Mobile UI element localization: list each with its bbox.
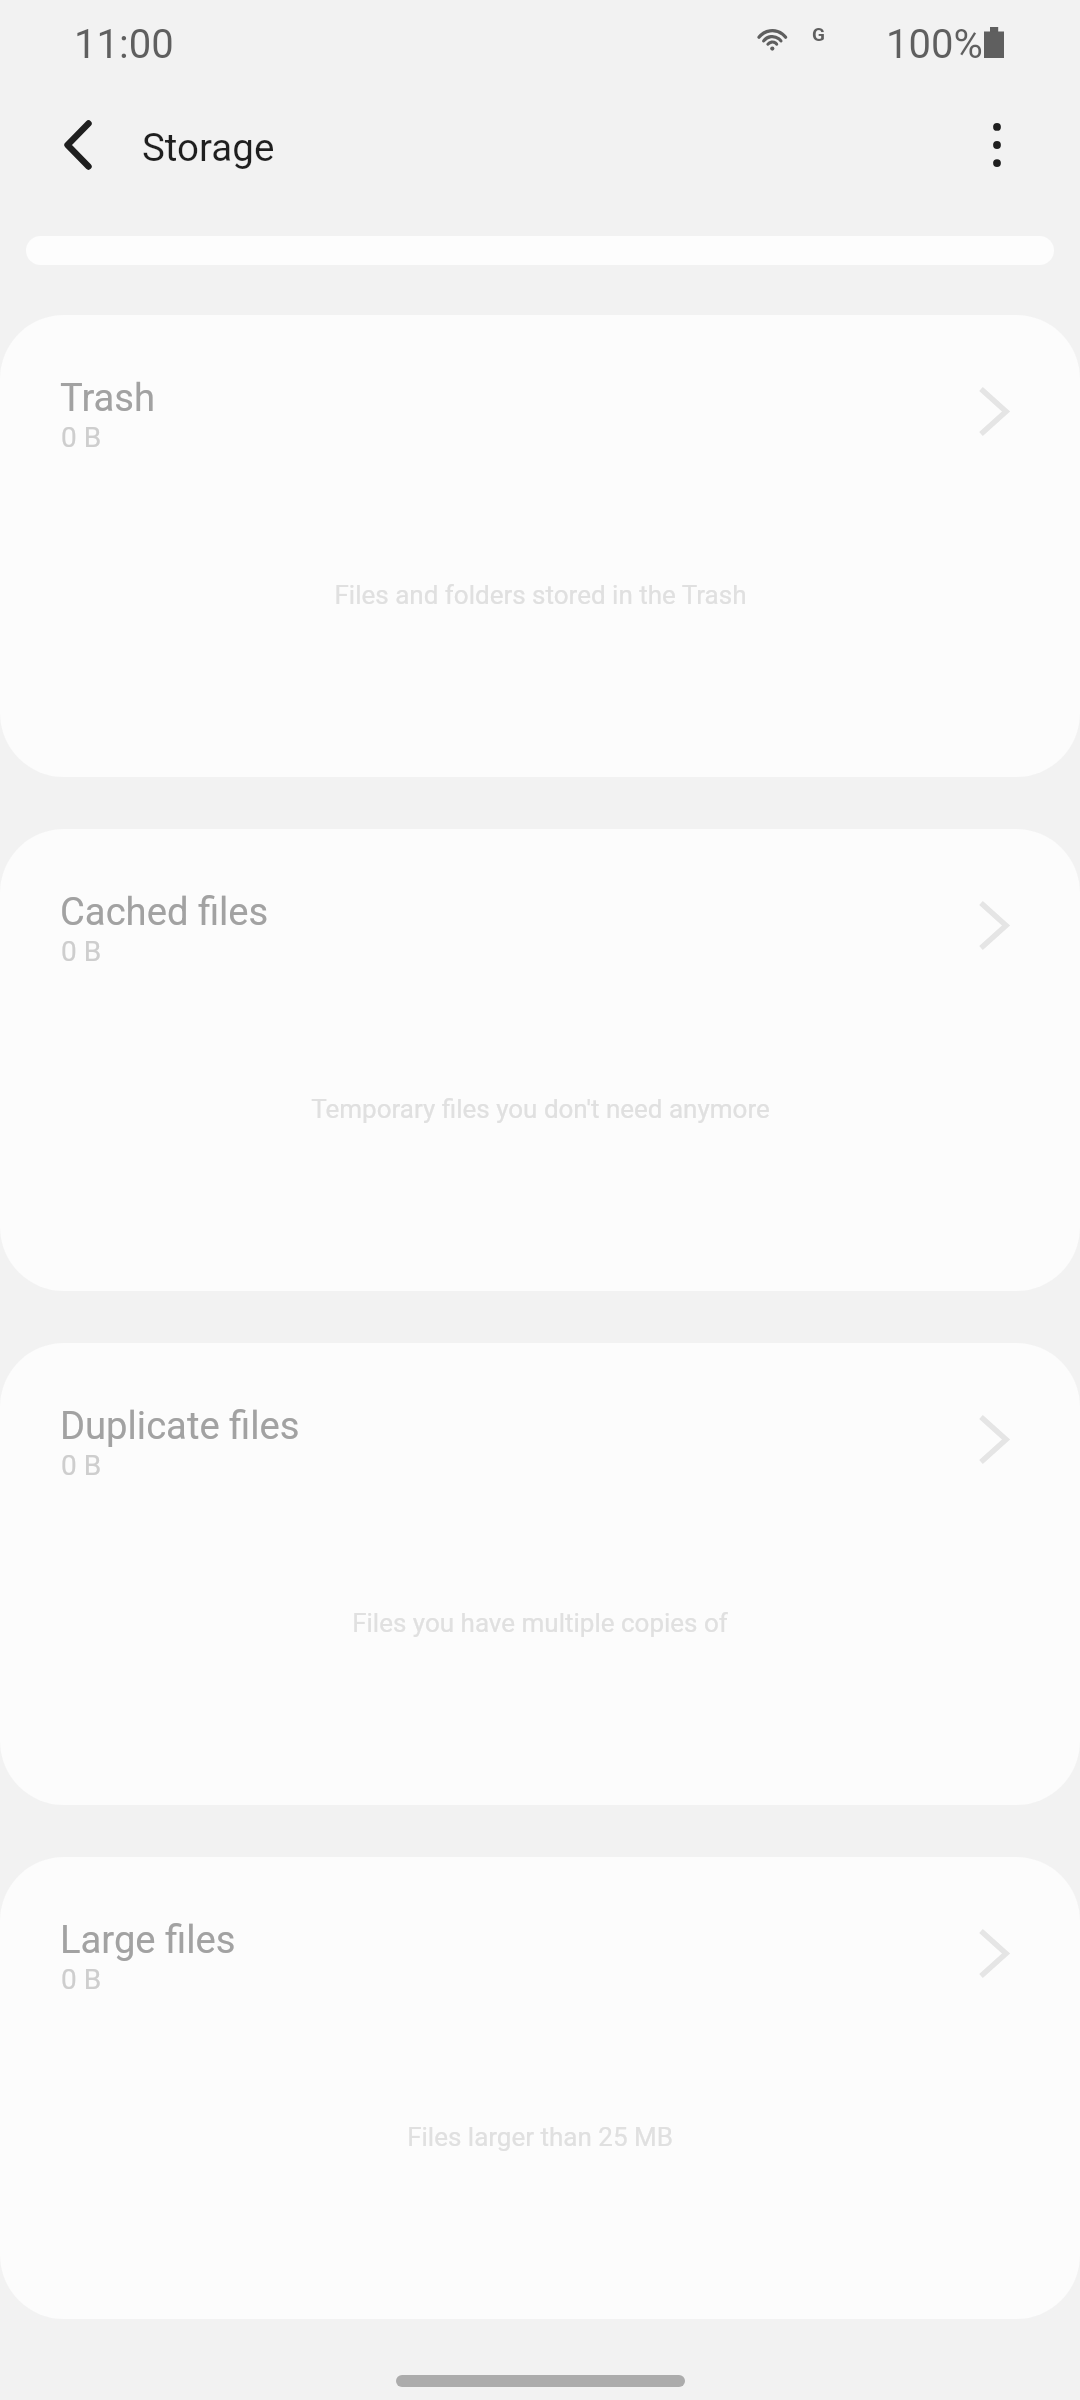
button[interactable]: Navigate up	[30, 97, 126, 193]
staticText: 0 B	[61, 1449, 102, 1482]
staticText: Trash	[60, 376, 156, 421]
other: Wi-Fi	[756, 28, 788, 52]
staticText: 0 B	[61, 1963, 102, 1996]
button[interactable]: Large files	[0, 1857, 1080, 2319]
staticText: 0 B	[61, 935, 102, 968]
staticText: Storage	[142, 125, 275, 170]
staticText: 0 B	[61, 421, 102, 454]
staticText: Files larger than 25 MB	[407, 2122, 673, 2152]
staticText: Large files	[60, 1918, 236, 1963]
staticText: G	[812, 23, 825, 45]
button[interactable]: Duplicate files	[0, 1343, 1080, 1805]
button[interactable]: Trash	[0, 315, 1080, 777]
staticText: Temporary files you don't need anymore	[311, 1094, 770, 1124]
staticText: 100%	[886, 21, 983, 68]
button[interactable]: Cached files	[0, 829, 1080, 1291]
staticText: Duplicate files	[60, 1404, 300, 1449]
other: Battery full	[984, 27, 1004, 58]
staticText: Files you have multiple copies of	[352, 1608, 728, 1638]
staticText: 11:00	[74, 21, 174, 68]
staticText: Cached files	[60, 890, 269, 935]
staticText: Files and folders stored in the Trash	[334, 580, 747, 610]
button[interactable]: More options	[949, 97, 1045, 193]
